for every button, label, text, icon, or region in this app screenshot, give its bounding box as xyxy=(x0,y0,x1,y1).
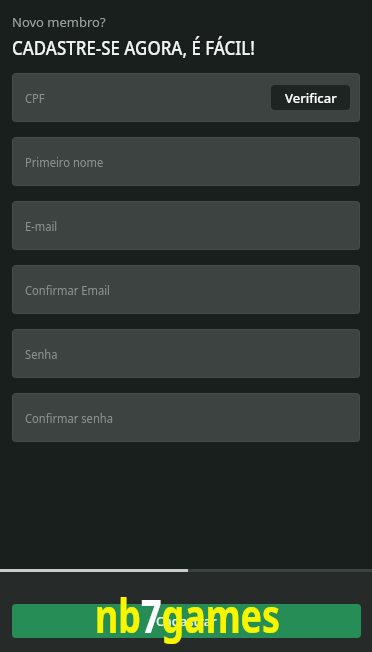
staticText: Senha xyxy=(25,346,57,362)
staticText: CADASTRE-SE AGORA, É FÁCIL! xyxy=(12,35,255,61)
button[interactable]: Primeiro nome xyxy=(12,137,360,186)
staticText: CPF xyxy=(25,90,45,106)
staticText: Primeiro nome xyxy=(25,154,104,170)
staticText: Confirmar Email xyxy=(25,282,111,298)
staticText: Confirmar senha xyxy=(25,410,113,426)
staticText: nb7games xyxy=(95,583,280,647)
button[interactable]: E-mail xyxy=(12,201,360,250)
button[interactable]: Confirmar Email xyxy=(12,265,360,314)
button[interactable]: Senha xyxy=(12,329,360,378)
button[interactable]: CPF xyxy=(12,73,360,122)
staticText: Cadastrar xyxy=(156,612,217,630)
button[interactable]: Cadastrar xyxy=(12,604,361,638)
button[interactable]: Confirmar senha xyxy=(12,393,360,442)
staticText: E-mail xyxy=(25,218,57,234)
staticText: Verificar xyxy=(285,89,337,107)
staticText: Novo membro? xyxy=(12,13,106,31)
button[interactable]: Verificar xyxy=(271,85,350,110)
